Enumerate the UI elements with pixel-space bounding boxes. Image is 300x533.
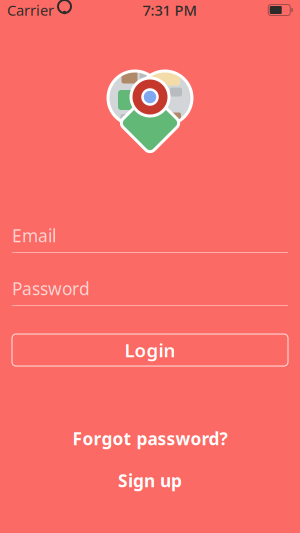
staticText: Email: [12, 224, 56, 247]
staticText: Carrier: [7, 0, 54, 20]
button[interactable]: Login: [12, 334, 288, 366]
staticText: 7:31 PM: [142, 0, 196, 20]
button[interactable]: Sign up: [106, 464, 194, 497]
staticText: Password: [12, 277, 90, 300]
staticText: Sign up: [118, 469, 182, 492]
button[interactable]: Forgot password?: [60, 422, 239, 455]
staticText: Forgot password?: [72, 427, 227, 450]
staticText: Login: [124, 338, 175, 362]
